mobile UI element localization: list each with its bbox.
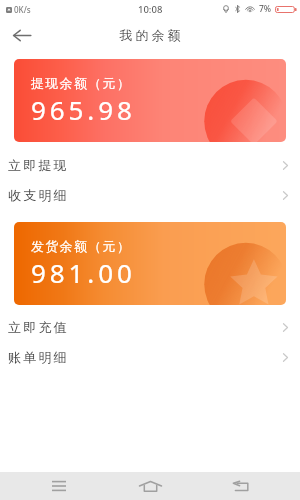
staticText: 提现余额（元） bbox=[31, 75, 132, 91]
staticText: 账单明细 bbox=[8, 349, 69, 365]
button[interactable]: 发货余额（元） bbox=[14, 222, 286, 305]
staticText: 981.00 bbox=[31, 255, 136, 290]
button[interactable]: Back bbox=[7, 20, 37, 50]
staticText: 立即提现 bbox=[8, 157, 69, 173]
staticText: 收支明细 bbox=[8, 187, 69, 203]
button[interactable]: Home bbox=[132, 472, 168, 500]
staticText: 965.98 bbox=[31, 92, 136, 127]
button[interactable]: 提现余额（元） bbox=[14, 59, 286, 142]
staticText: 发货余额（元） bbox=[31, 238, 132, 254]
staticText: 0K/s bbox=[14, 4, 31, 15]
button[interactable]: Back bbox=[222, 472, 258, 500]
staticText: 7% bbox=[259, 3, 272, 15]
button[interactable]: Recents bbox=[41, 472, 77, 500]
button[interactable]: 立即提现 bbox=[0, 150, 300, 180]
button[interactable]: 立即充值 bbox=[0, 312, 300, 342]
button[interactable]: 收支明细 bbox=[0, 180, 300, 210]
staticText: 我的余额 bbox=[118, 27, 182, 43]
staticText: 10:08 bbox=[138, 3, 163, 16]
button[interactable]: 账单明细 bbox=[0, 342, 300, 372]
staticText: 立即充值 bbox=[8, 319, 69, 335]
